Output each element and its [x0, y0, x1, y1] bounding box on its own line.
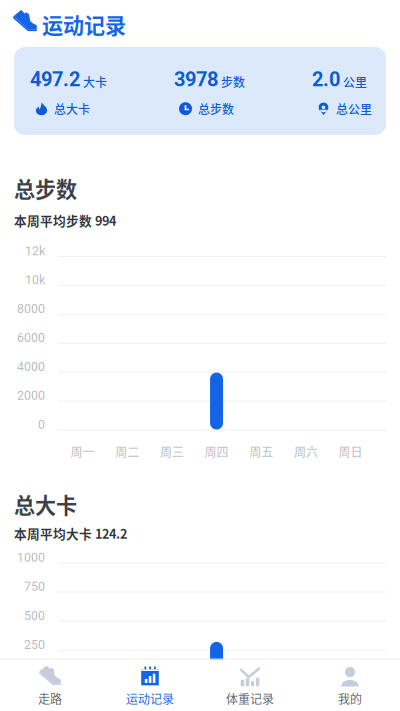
staticText: 运动记录 [42, 12, 126, 36]
staticText: 走路 [38, 691, 62, 705]
staticText: 总大卡 [14, 492, 77, 516]
staticText: 总大卡 [54, 102, 90, 116]
staticText: 8000 [17, 303, 45, 315]
staticText: 2.0 [312, 70, 340, 89]
staticText: 总公里 [336, 102, 372, 116]
staticText: 1000 [17, 552, 45, 563]
staticText: 6000 [17, 332, 45, 343]
staticText: 周二 [115, 445, 139, 458]
staticText: 0 [38, 668, 45, 680]
staticText: 250 [24, 639, 45, 651]
staticText: 本周平均大卡 124.2 [14, 526, 127, 541]
staticText: 总步数 [198, 102, 234, 116]
staticText: 周日 [339, 445, 363, 458]
staticText: 我的 [338, 691, 362, 705]
staticText: 周四 [205, 445, 229, 458]
staticText: 体重记录 [226, 691, 274, 705]
staticText: 周三 [160, 445, 184, 458]
staticText: 公里 [343, 75, 367, 89]
staticText: 周一 [70, 445, 94, 458]
staticText: 0 [38, 419, 45, 430]
staticText: 周六 [294, 445, 318, 458]
staticText: 步数 [221, 75, 245, 89]
button[interactable]: 体重记录 [200, 659, 300, 711]
staticText: 周五 [249, 445, 273, 458]
staticText: 497.2 [30, 70, 80, 89]
button[interactable]: 走路 [0, 659, 100, 711]
staticText: 500 [24, 610, 45, 621]
staticText: 10k [25, 274, 45, 286]
button[interactable]: 我的 [300, 659, 400, 711]
staticText: 本周平均步数 994 [14, 213, 116, 228]
staticText: 4000 [17, 361, 45, 372]
staticText: 2000 [17, 390, 45, 401]
staticText: 总步数 [14, 176, 77, 200]
staticText: 12k [25, 245, 45, 257]
staticText: 3978 [174, 70, 218, 89]
staticText: 750 [24, 581, 45, 592]
staticText: 大卡 [83, 75, 107, 89]
staticText: 运动记录 [126, 691, 174, 705]
button[interactable]: 运动记录 [100, 659, 200, 711]
